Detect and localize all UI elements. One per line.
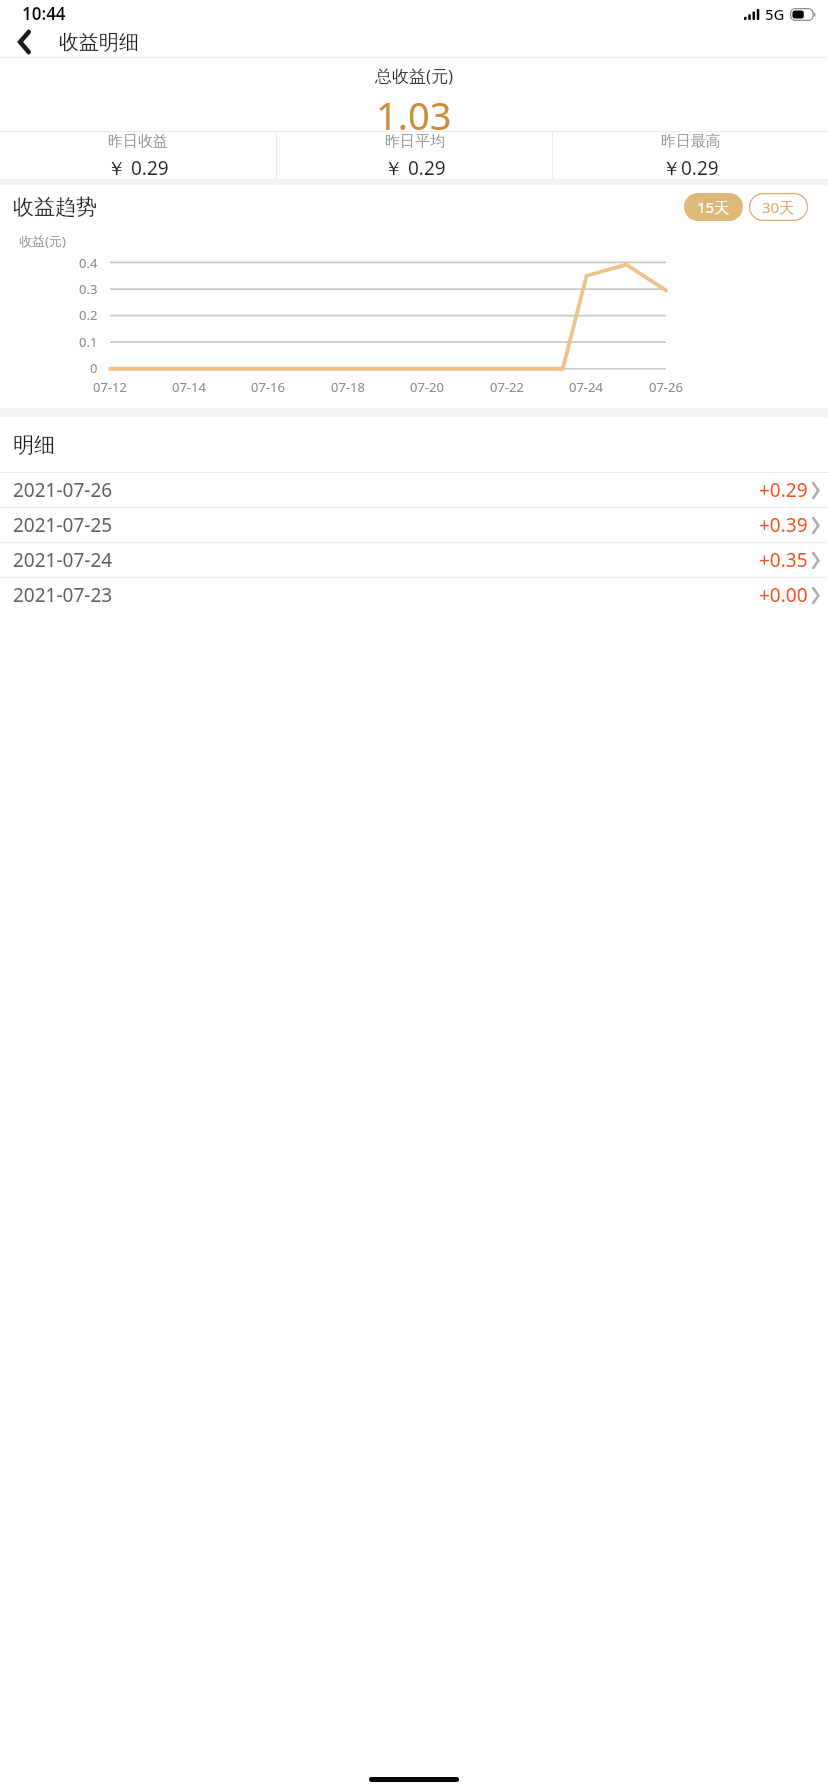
staticText: 0.2 (79, 306, 98, 324)
staticText: 07-14 (172, 378, 206, 396)
button[interactable]: 2021-07-23 (0, 578, 828, 612)
staticText: ￥ 0.29 (107, 155, 169, 179)
staticText: 30天 (762, 197, 795, 217)
staticText: 收益明细 (59, 30, 139, 55)
staticText: 2021-07-26 (13, 477, 113, 503)
staticText: 总收益(元) (375, 64, 454, 87)
staticText: +0.29 (759, 477, 808, 503)
button[interactable]: 30天 (749, 193, 808, 221)
staticText: 昨日收益 (108, 132, 168, 151)
button[interactable]: 昨日收益 (0, 132, 276, 179)
staticText: 2021-07-24 (13, 547, 113, 573)
button[interactable]: 2021-07-25 (0, 508, 828, 542)
staticText: ￥0.29 (662, 155, 719, 179)
staticText: 07-12 (93, 378, 127, 396)
staticText: 15天 (697, 197, 730, 217)
staticText: 0.4 (79, 254, 98, 272)
staticText: ￥ 0.29 (384, 155, 446, 179)
staticText: 收益趋势 (13, 194, 97, 220)
staticText: +0.35 (759, 547, 808, 573)
staticText: 昨日最高 (661, 132, 721, 151)
button[interactable]: 昨日最高 (553, 132, 828, 179)
staticText: 07-22 (490, 378, 524, 396)
staticText: 07-16 (251, 378, 285, 396)
button[interactable]: 15天 (684, 193, 743, 221)
staticText: 0.3 (79, 280, 98, 298)
staticText: 0.1 (79, 333, 98, 351)
staticText: 2021-07-25 (13, 512, 113, 538)
staticText: +0.00 (759, 582, 808, 608)
staticText: 5G (765, 4, 785, 24)
button[interactable]: 2021-07-26 (0, 473, 828, 507)
staticText: 收益(元) (19, 232, 66, 250)
staticText: 07-18 (331, 378, 365, 396)
staticText: 2021-07-23 (13, 582, 113, 608)
staticText: 昨日平均 (385, 132, 445, 151)
staticText: 07-24 (569, 378, 603, 396)
staticText: 1.03 (376, 89, 452, 131)
staticText: +0.39 (759, 512, 808, 538)
button[interactable]: 昨日平均 (277, 132, 552, 179)
staticText: 07-26 (649, 378, 683, 396)
staticText: 明细 (13, 432, 55, 458)
staticText: 07-20 (410, 378, 444, 396)
staticText: 10:44 (22, 2, 66, 25)
staticText: 0 (90, 359, 98, 377)
button[interactable]: Back (4, 27, 44, 57)
button[interactable]: 2021-07-24 (0, 543, 828, 577)
